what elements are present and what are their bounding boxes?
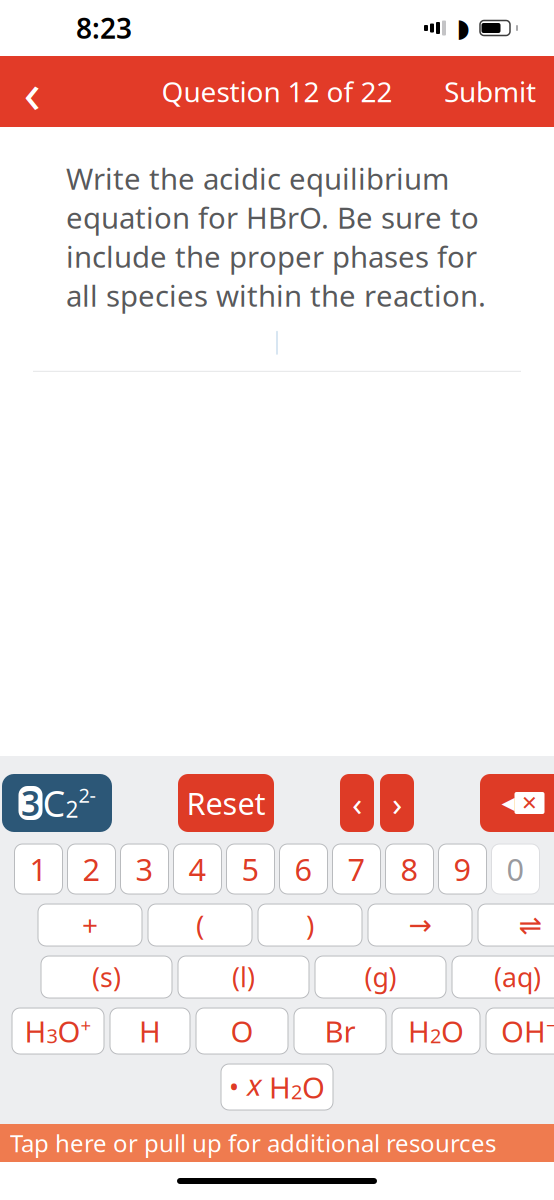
staticText: 2 <box>430 1022 441 1049</box>
button[interactable]: H <box>12 1008 104 1054</box>
staticText: (s) <box>92 959 121 995</box>
staticText: Tap here or pull up for additional resou… <box>10 1127 496 1159</box>
staticText: Br <box>324 1011 355 1050</box>
staticText: → <box>408 909 431 941</box>
staticText: OH <box>501 1011 546 1050</box>
staticText: H <box>408 1011 430 1050</box>
staticText: O <box>57 1011 80 1050</box>
button[interactable]: → <box>368 904 472 946</box>
staticText: 4 <box>188 849 206 889</box>
button[interactable]: H <box>392 1008 480 1054</box>
staticText: − <box>546 1013 554 1037</box>
button[interactable]: 6 <box>279 844 327 894</box>
button[interactable]: Delete <box>480 774 554 832</box>
button[interactable]: 2 <box>67 844 115 894</box>
staticText: 3 <box>21 781 40 825</box>
staticText: 6 <box>294 849 312 889</box>
button[interactable]: ( <box>148 904 252 946</box>
staticText: • <box>229 1069 246 1105</box>
button[interactable]: 9 <box>438 844 486 894</box>
button[interactable]: Submit <box>426 59 554 123</box>
staticText: + <box>82 906 98 944</box>
staticText: 2- <box>78 782 95 808</box>
staticText: ◀ <box>501 793 514 813</box>
button[interactable]: (aq) <box>452 956 554 998</box>
staticText: 0 <box>506 849 524 889</box>
staticText: 3 <box>46 1022 57 1049</box>
staticText: O <box>441 1011 464 1050</box>
staticText: (aq) <box>494 959 541 995</box>
button[interactable]: Current formula <box>2 774 112 832</box>
button[interactable]: + <box>38 904 142 946</box>
staticText: H <box>139 1011 161 1050</box>
button[interactable]: (l) <box>178 956 309 998</box>
staticText: 7 <box>347 849 365 889</box>
staticText: Reset <box>186 783 265 823</box>
staticText: 8 <box>400 849 418 889</box>
button[interactable]: O <box>196 1008 288 1054</box>
staticText: 8:23 <box>76 9 132 47</box>
staticText: Write the acidic equilibrium equation fo… <box>66 159 486 315</box>
staticText: O <box>230 1011 253 1050</box>
button[interactable]: 3 <box>120 844 168 894</box>
staticText: ‹ <box>23 54 40 129</box>
staticText: ( <box>196 906 204 944</box>
button[interactable]: (g) <box>315 956 446 998</box>
staticText: ) <box>306 906 314 944</box>
staticText: ‹ <box>352 781 362 825</box>
staticText: 𝑥 <box>246 1073 269 1101</box>
button[interactable]: OH <box>486 1008 554 1054</box>
staticText: 2 <box>291 1078 302 1105</box>
staticText: (l) <box>232 959 255 995</box>
button[interactable]: Move cursor left <box>340 774 374 832</box>
button[interactable]: Br <box>294 1008 386 1054</box>
button[interactable]: • <box>221 1064 333 1110</box>
button[interactable]: 1 <box>14 844 62 894</box>
staticText: Submit <box>444 73 536 110</box>
staticText: 1 <box>29 849 47 889</box>
staticText: 9 <box>453 849 471 889</box>
staticText: › <box>392 781 402 825</box>
staticText: H <box>269 1067 291 1106</box>
staticText: 2 <box>65 794 78 824</box>
button[interactable]: (s) <box>41 956 172 998</box>
button[interactable]: ⇌ <box>478 904 554 946</box>
button[interactable]: H <box>110 1008 190 1054</box>
button[interactable]: 8 <box>385 844 433 894</box>
staticText: 3 <box>135 849 153 889</box>
staticText: (g) <box>364 959 396 995</box>
staticText: 2 <box>82 849 100 889</box>
button[interactable]: 0 <box>491 844 539 894</box>
staticText: H <box>24 1011 46 1050</box>
staticText: ⇌ <box>518 909 541 941</box>
button[interactable]: Tap here or pull up for additional resou… <box>0 1124 554 1162</box>
staticText: C <box>42 779 65 827</box>
button[interactable]: 7 <box>332 844 380 894</box>
button[interactable]: 4 <box>173 844 221 894</box>
button[interactable]: 5 <box>226 844 274 894</box>
button[interactable]: Back <box>0 59 64 123</box>
staticText: + <box>80 1013 91 1037</box>
staticText: ◗ <box>456 14 469 42</box>
staticText: Question 12 of 22 <box>161 73 392 110</box>
staticText: 5 <box>241 849 259 889</box>
button[interactable]: ) <box>258 904 362 946</box>
button[interactable]: Reset <box>178 774 274 832</box>
staticText: O <box>302 1067 325 1106</box>
button[interactable]: Move cursor right <box>380 774 414 832</box>
staticText: ✕ <box>521 792 538 814</box>
